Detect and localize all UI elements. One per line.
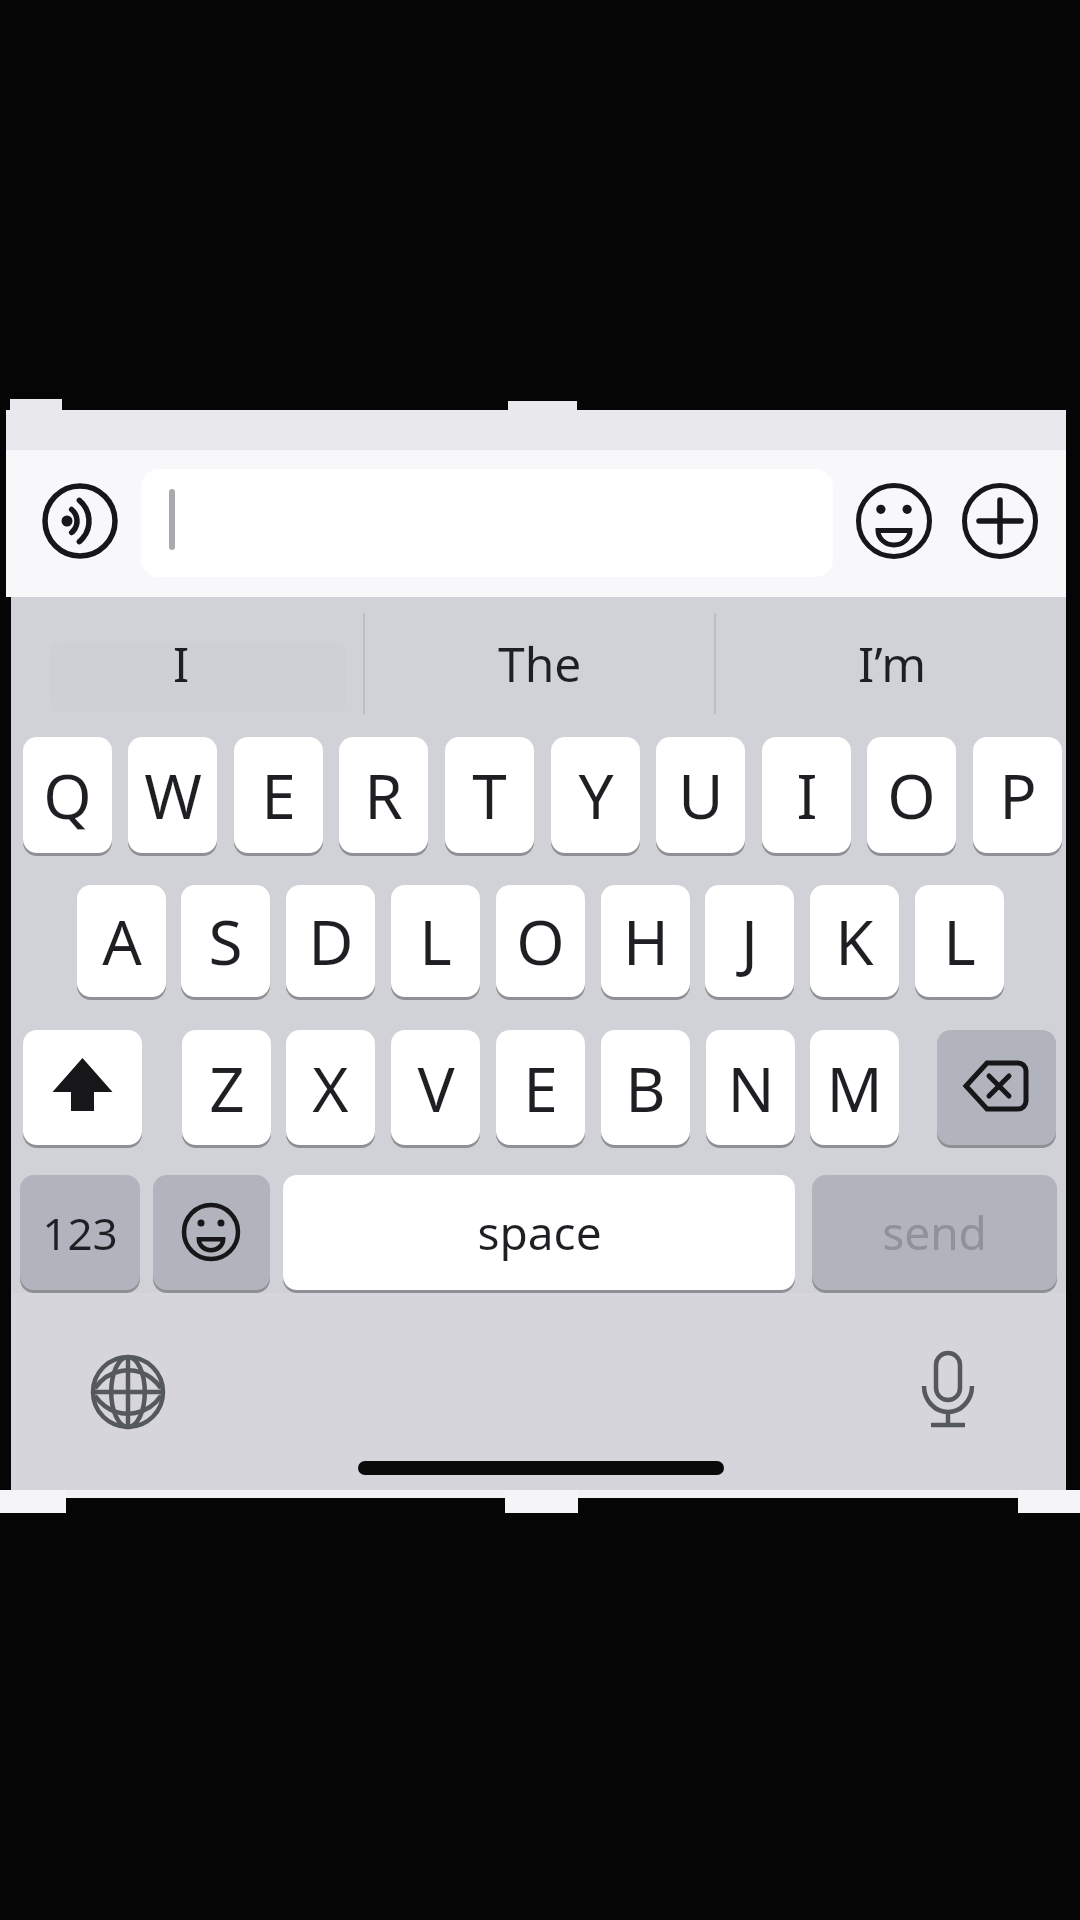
staticText: N — [727, 1046, 775, 1130]
staticText: Q — [43, 753, 92, 837]
staticText: V — [417, 1046, 455, 1130]
button[interactable] — [153, 1175, 270, 1290]
staticText: space — [477, 1201, 602, 1264]
button[interactable]: I — [762, 737, 851, 853]
staticText: J — [741, 899, 758, 983]
button[interactable]: U — [656, 737, 745, 853]
button[interactable] — [858, 486, 929, 556]
button[interactable]: O — [496, 885, 585, 997]
staticText: The — [498, 631, 582, 696]
button[interactable]: S — [181, 885, 270, 997]
staticText: 123 — [42, 1203, 118, 1263]
button[interactable]: D — [286, 885, 375, 997]
button[interactable]: The — [365, 600, 714, 727]
button[interactable]: M — [810, 1030, 899, 1145]
staticText: W — [144, 753, 202, 837]
staticText: I — [173, 631, 190, 696]
button[interactable]: L — [915, 885, 1004, 997]
button[interactable]: K — [810, 885, 899, 997]
button[interactable]: R — [339, 737, 428, 853]
button[interactable] — [937, 1030, 1056, 1145]
button[interactable] — [23, 1030, 142, 1145]
button[interactable]: Z — [182, 1030, 271, 1145]
staticText: L — [943, 899, 976, 983]
staticText: M — [826, 1046, 883, 1130]
button[interactable]: E — [234, 737, 323, 853]
button[interactable]: P — [973, 737, 1062, 853]
staticText: S — [208, 899, 243, 983]
button[interactable] — [45, 486, 115, 556]
staticText: H — [623, 899, 669, 983]
button[interactable] — [964, 486, 1035, 556]
staticText: B — [625, 1046, 666, 1130]
button[interactable]: J — [705, 885, 794, 997]
staticText: R — [364, 753, 403, 837]
staticText: Z — [209, 1046, 245, 1130]
button[interactable]: L — [391, 885, 480, 997]
button[interactable]: W — [128, 737, 217, 853]
staticText: T — [472, 753, 507, 837]
button[interactable]: 123 — [20, 1175, 140, 1290]
button[interactable]: Y — [551, 737, 640, 853]
button[interactable]: send — [812, 1175, 1057, 1290]
button[interactable] — [78, 1342, 178, 1442]
staticText: E — [261, 753, 296, 837]
staticText: D — [308, 899, 354, 983]
button[interactable]: T — [445, 737, 534, 853]
staticText: L — [419, 899, 452, 983]
staticText: K — [835, 899, 874, 983]
button[interactable]: X — [286, 1030, 375, 1145]
button[interactable] — [141, 469, 833, 577]
button[interactable]: E — [496, 1030, 585, 1145]
button[interactable]: I — [0, 600, 363, 727]
staticText: U — [678, 753, 724, 837]
button[interactable] — [898, 1338, 998, 1438]
button[interactable]: I’m — [716, 600, 1068, 727]
staticText: A — [102, 899, 142, 983]
button[interactable]: H — [601, 885, 690, 997]
staticText: O — [887, 753, 936, 837]
button[interactable]: V — [391, 1030, 480, 1145]
button[interactable]: B — [601, 1030, 690, 1145]
button[interactable]: N — [706, 1030, 795, 1145]
staticText: O — [516, 899, 565, 983]
staticText: I — [796, 753, 818, 837]
staticText: P — [999, 753, 1037, 837]
button[interactable]: A — [77, 885, 166, 997]
staticText: send — [882, 1201, 987, 1264]
staticText: X — [312, 1046, 349, 1130]
button[interactable]: Q — [23, 737, 112, 853]
staticText: E — [523, 1046, 558, 1130]
button[interactable]: O — [867, 737, 956, 853]
staticText: I’m — [858, 631, 927, 696]
button[interactable]: space — [283, 1175, 795, 1290]
staticText: Y — [578, 753, 614, 837]
